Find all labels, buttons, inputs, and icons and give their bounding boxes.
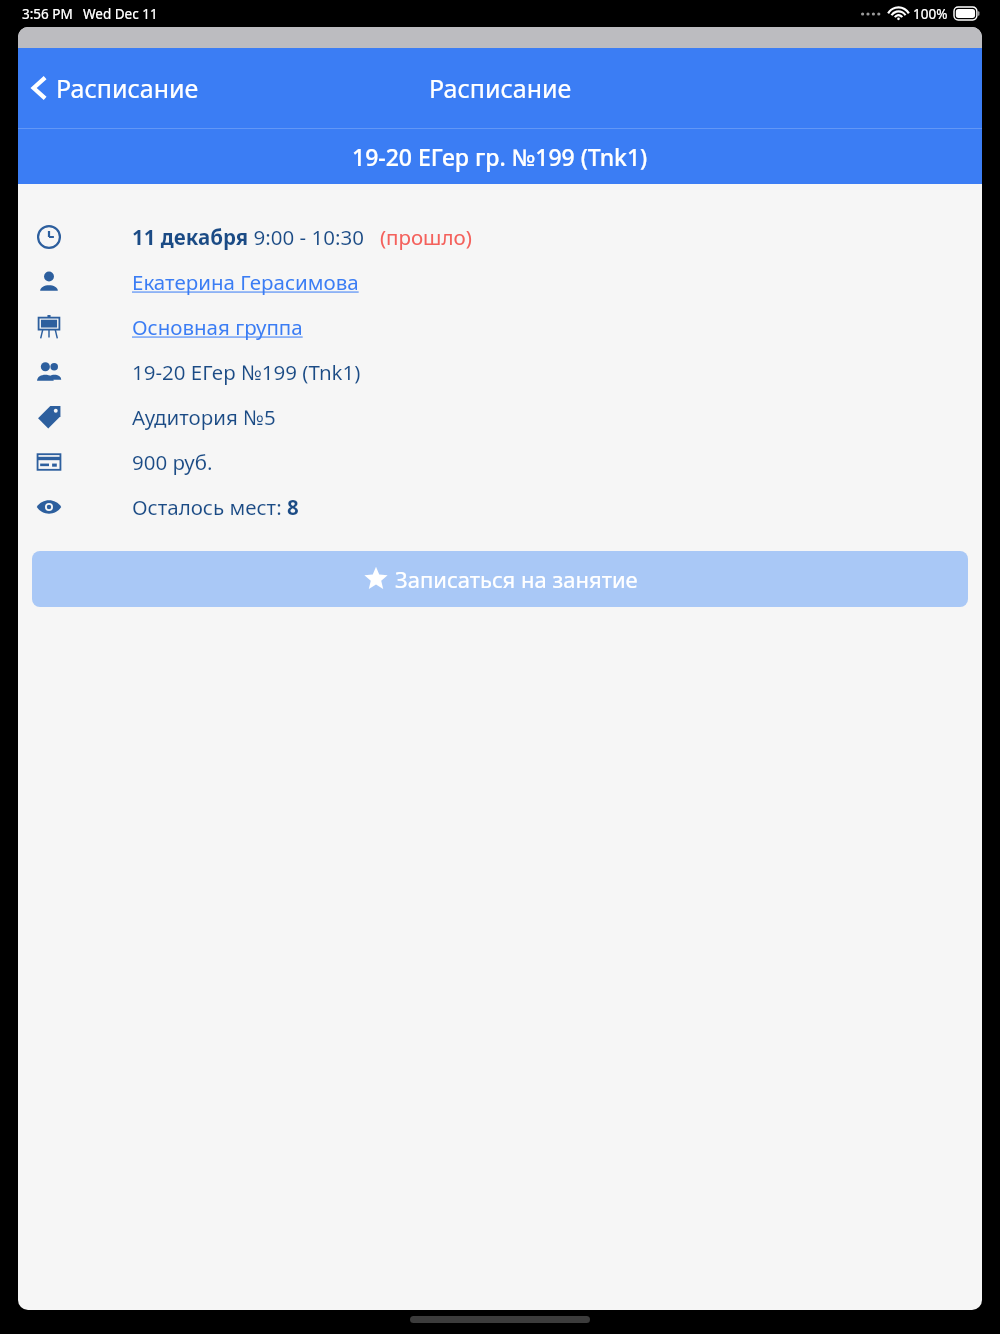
staticText: Осталось мест: 8 — [132, 493, 299, 521]
other: Participants — [32, 355, 66, 389]
staticText: Расписание — [56, 71, 199, 105]
staticText: Аудитория №5 — [132, 403, 276, 431]
other: Price — [32, 445, 66, 479]
other: Clock — [32, 220, 66, 254]
other: Group — [32, 310, 66, 344]
other: Person — [32, 265, 66, 299]
staticText: Расписание — [429, 71, 572, 105]
staticText: 19-20 ЕГер гр. №199 (Tnk1) — [352, 141, 648, 172]
staticText: 3:56 PM — [22, 5, 73, 23]
staticText: Wed Dec 11 — [83, 5, 158, 23]
staticText: 900 руб. — [132, 448, 213, 476]
button[interactable]: Расписание — [26, 65, 205, 111]
other: Seats — [32, 490, 66, 524]
staticText: 19-20 ЕГер №199 (Tnk1) — [132, 358, 361, 386]
other: Room — [32, 400, 66, 434]
button[interactable]: Записаться на занятие — [32, 551, 968, 607]
staticText: 11 декабря 9:00 - 10:30 (прошло) — [132, 223, 472, 251]
button[interactable]: Екатерина Герасимова — [132, 268, 359, 296]
staticText: Записаться на занятие — [395, 564, 638, 594]
staticText: 100% — [913, 5, 948, 23]
button[interactable]: Основная группа — [132, 313, 303, 341]
